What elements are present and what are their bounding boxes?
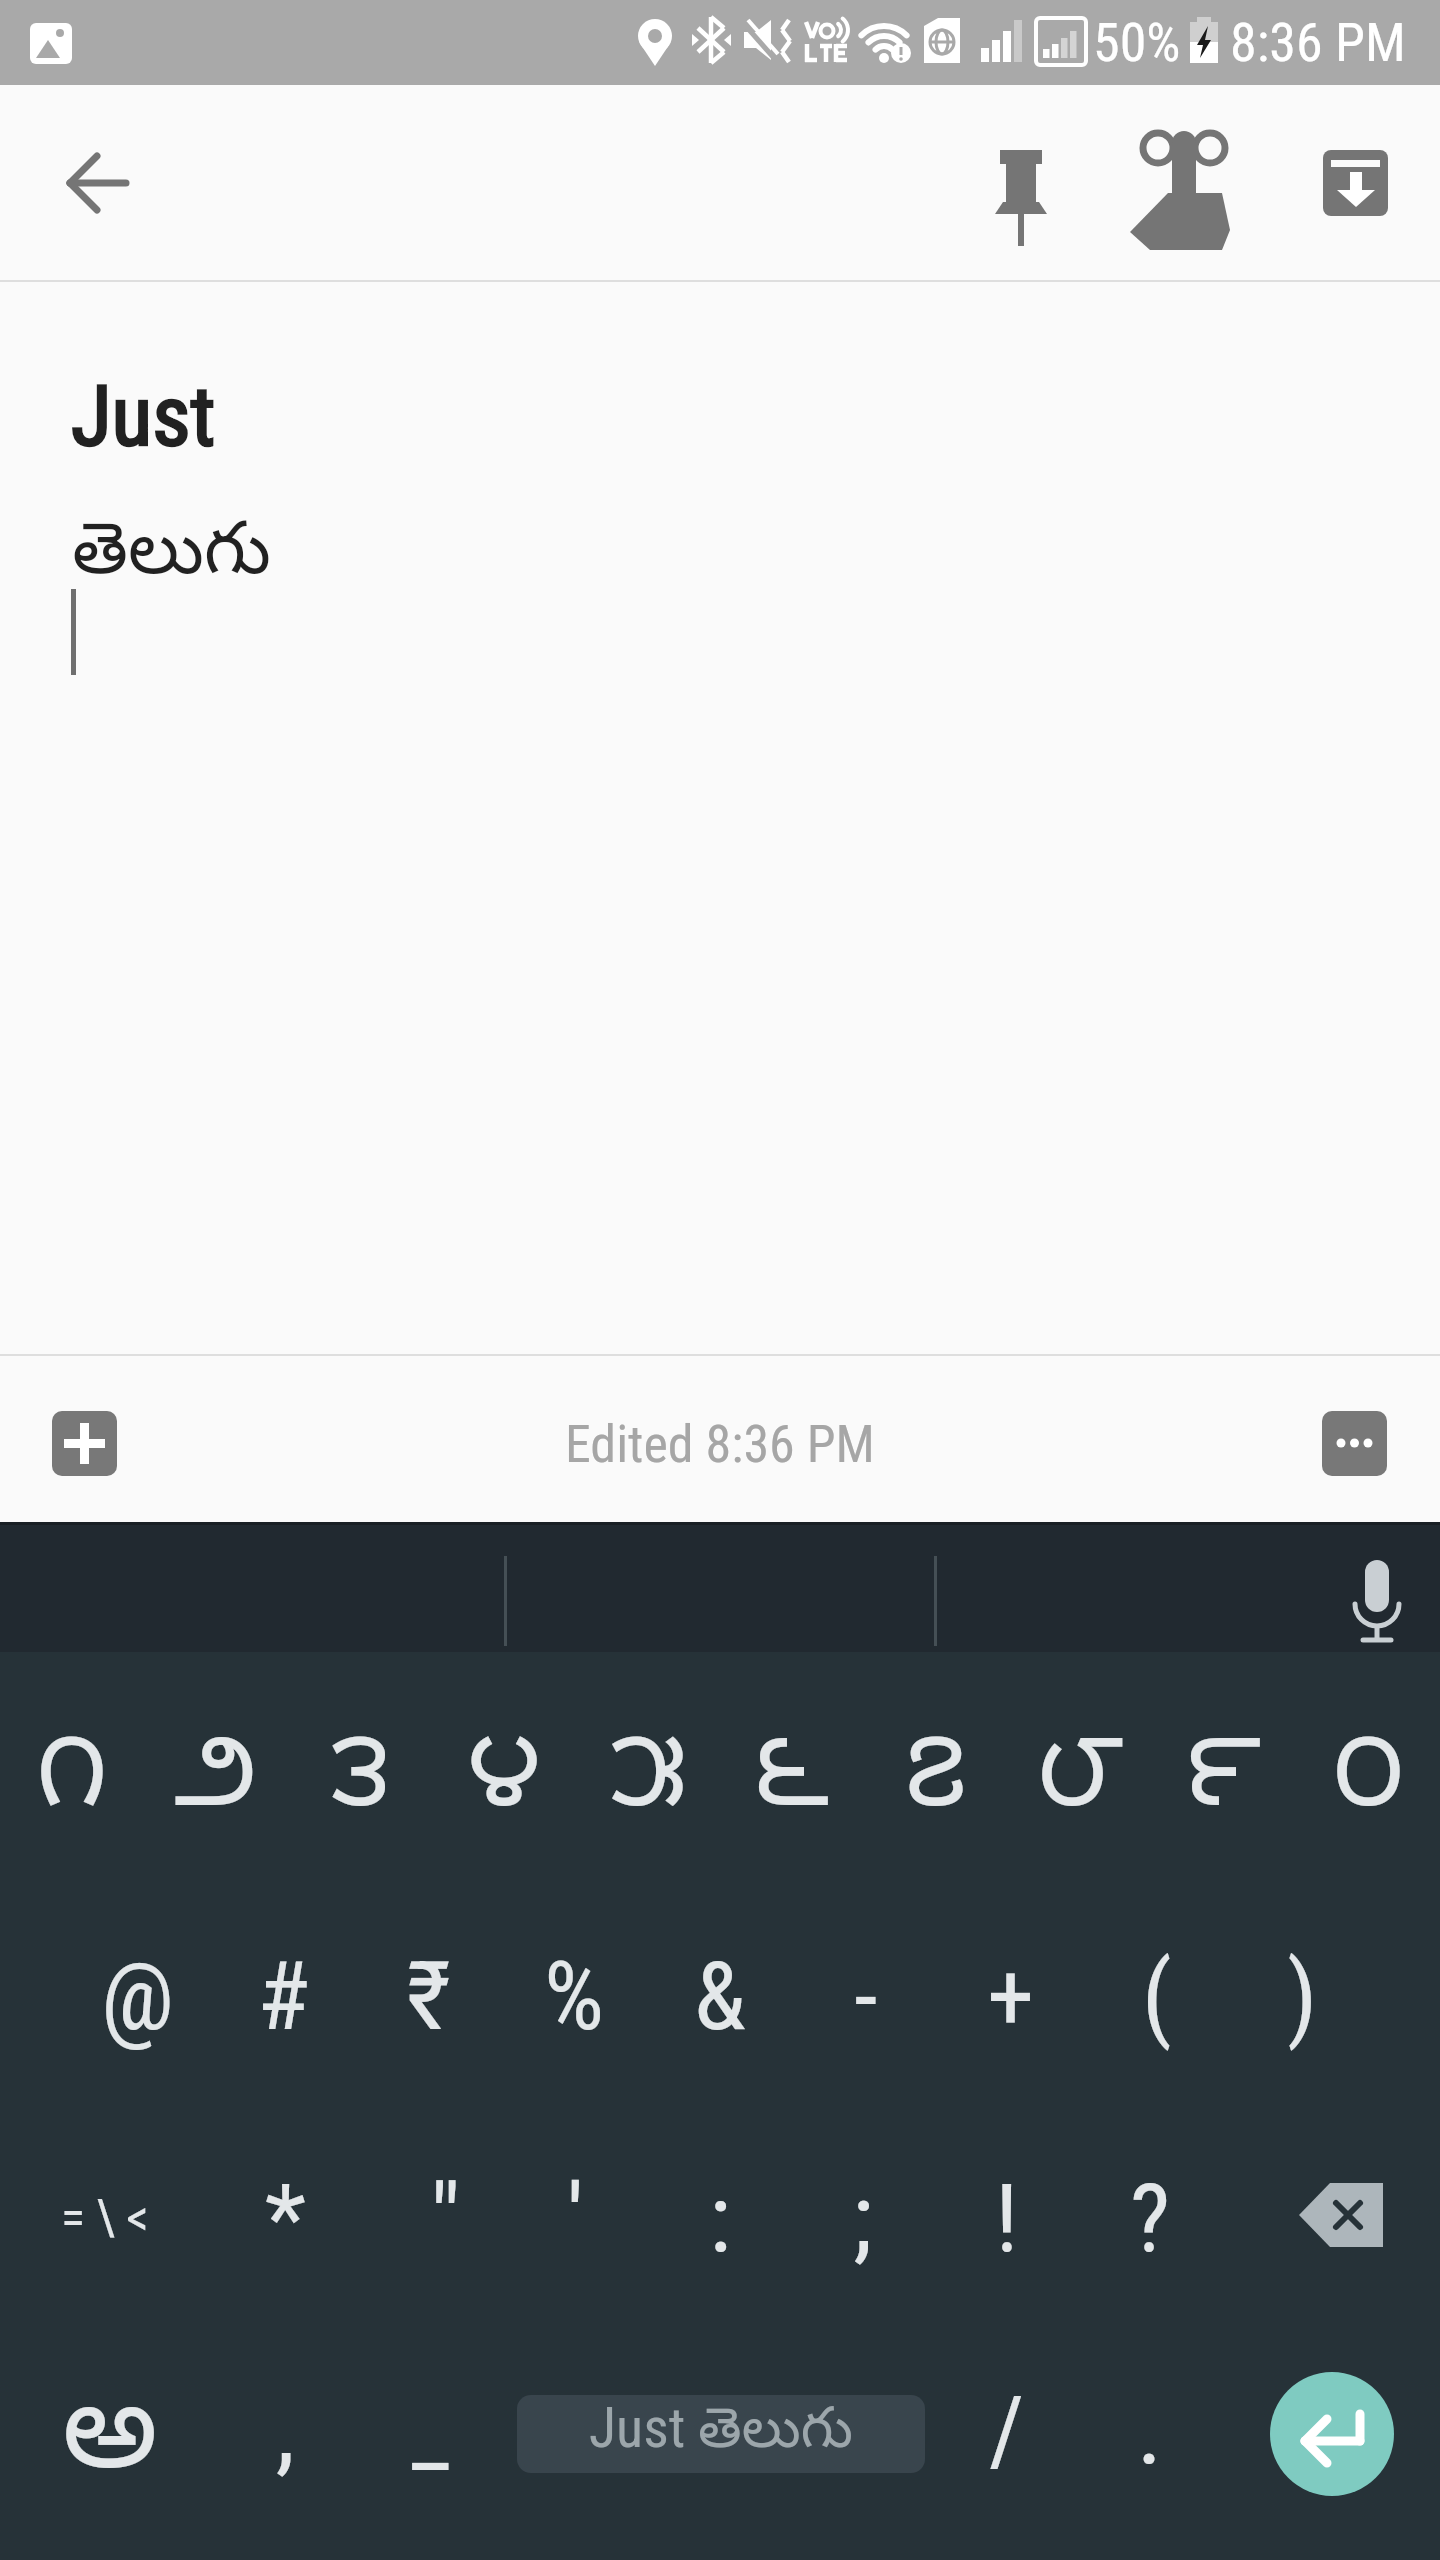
staticText: _ (411, 2375, 450, 2486)
staticText: ౪ (467, 1711, 542, 1857)
staticText: ౩ (331, 1711, 390, 1857)
staticText: " (430, 2163, 461, 2274)
staticText: అ (62, 2363, 158, 2525)
staticText: 50% (1093, 11, 1181, 74)
staticText: ౧ (36, 1711, 108, 1857)
staticText: 8:36 PM (1230, 11, 1406, 74)
staticText: * (265, 2163, 306, 2274)
staticText: , (276, 2375, 295, 2486)
staticText: ) (1287, 1941, 1318, 2052)
staticText: ₹ (407, 1941, 451, 2052)
staticText: ౮ (1037, 1711, 1124, 1857)
staticText: ౫ (610, 1711, 687, 1857)
staticText: Just తెలుగు (589, 2395, 853, 2473)
staticText: ' (567, 2163, 584, 2274)
staticText: ౦ (1332, 1711, 1405, 1857)
staticText: . (1137, 2375, 1163, 2486)
staticText: Edited 8:36 PM (565, 1414, 875, 1475)
staticText: Just (71, 367, 216, 465)
staticText: ; (853, 2163, 873, 2274)
staticText: ( (1142, 1941, 1172, 2052)
staticText: # (257, 1941, 310, 2052)
staticText: ౭ (905, 1711, 967, 1857)
staticText: : (709, 2163, 732, 2274)
staticText: ౯ (1186, 1711, 1262, 1857)
staticText: ౬ (754, 1711, 830, 1857)
staticText: & (694, 1941, 746, 2052)
staticText: ౨ (174, 1711, 258, 1857)
staticText: / (989, 2375, 1025, 2486)
staticText: = \ < (61, 2189, 149, 2248)
staticText: తెలుగు (72, 510, 271, 607)
staticText: + (987, 1941, 1035, 2052)
staticText: - (854, 1941, 878, 2052)
staticText: % (544, 1941, 605, 2052)
staticText: @ (101, 1941, 175, 2052)
staticText: ! (995, 2163, 1019, 2274)
staticText: ? (1130, 2163, 1171, 2274)
